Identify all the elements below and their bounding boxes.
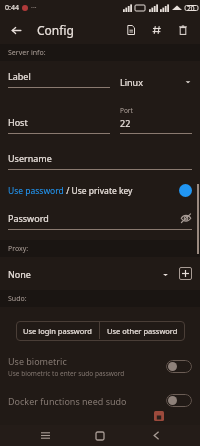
other: Select proxy xyxy=(162,271,169,278)
button[interactable]: Linux xyxy=(120,76,192,88)
staticText: Docker functions need sudo xyxy=(8,395,166,407)
staticText: Username xyxy=(8,152,52,164)
button[interactable]: Toggle xyxy=(166,360,192,373)
button[interactable]: Tags xyxy=(147,20,167,40)
button[interactable]: Home xyxy=(89,425,111,446)
staticText: Linux xyxy=(120,76,184,88)
staticText: 20 xyxy=(187,4,195,13)
staticText: Port xyxy=(120,106,133,115)
button[interactable]: Host xyxy=(8,116,110,134)
staticText: Sudo: xyxy=(8,294,27,304)
button[interactable]: Recents xyxy=(34,425,56,446)
button[interactable]: None xyxy=(8,268,169,280)
staticText: Use password xyxy=(8,185,64,197)
button[interactable]: Add proxy xyxy=(179,267,192,280)
staticText: ··· xyxy=(31,3,37,13)
staticText: Server info: xyxy=(8,48,46,58)
staticText: / Use private key xyxy=(64,185,133,197)
button[interactable]: File xyxy=(121,20,141,40)
staticText: Use other password xyxy=(107,326,178,336)
other: Auth mode toggle xyxy=(179,184,192,197)
button[interactable]: Docker functions need sudo xyxy=(8,394,192,407)
button[interactable]: Use other password xyxy=(100,321,185,341)
staticText: Label xyxy=(8,70,31,82)
staticText: Use login password xyxy=(23,326,92,336)
button[interactable]: Delete xyxy=(173,20,193,40)
button[interactable]: Port xyxy=(120,106,192,134)
staticText: 22 xyxy=(120,117,131,129)
staticText: None xyxy=(8,268,162,280)
button[interactable]: Password xyxy=(8,212,192,224)
button[interactable]: Use biometric xyxy=(8,355,192,378)
staticText: Password xyxy=(8,212,180,224)
button[interactable]: Back xyxy=(7,21,25,39)
staticText: Proxy: xyxy=(8,244,29,254)
other: Select OS xyxy=(184,78,192,86)
staticText: Use biometric to enter sudo password xyxy=(8,369,125,378)
button[interactable]: Toggle xyxy=(166,394,192,407)
button[interactable]: Back xyxy=(145,425,167,446)
button[interactable]: Use password xyxy=(8,184,192,197)
staticText: Host xyxy=(8,116,28,128)
button[interactable]: Use login password xyxy=(16,321,99,341)
staticText: 0:44 xyxy=(5,3,19,13)
button[interactable]: Save xyxy=(150,407,190,417)
button[interactable]: Show password xyxy=(180,212,192,224)
staticText: Use biometric xyxy=(8,355,67,367)
staticText: Config xyxy=(37,22,121,38)
button[interactable]: Label xyxy=(8,70,110,88)
button[interactable]: Username xyxy=(8,152,192,170)
